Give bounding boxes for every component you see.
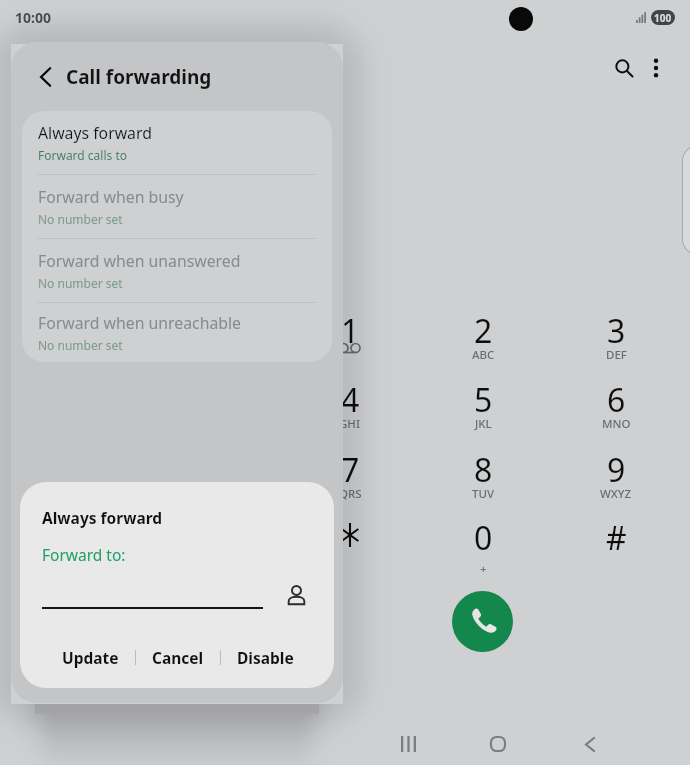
staticText: No number set [38,337,123,353]
button[interactable]: 5 [425,361,541,427]
button[interactable]: Choose contact [276,575,316,615]
staticText: ABC [472,347,495,363]
staticText: 8 [474,448,493,492]
button[interactable]: More options [636,48,676,88]
staticText: Forward when unreachable [38,312,241,334]
staticText: 10:00 [15,8,51,27]
button[interactable]: Back [27,59,63,95]
staticText: Always forward [38,122,152,144]
staticText: 5 [474,378,493,422]
staticText: + [480,561,487,577]
staticText: JKL [475,416,492,432]
staticText: WXYZ [600,486,632,502]
staticText: Cancel [152,647,204,668]
staticText: Forward when unanswered [38,250,241,272]
staticText: MNO [602,416,631,432]
staticText: Forward calls to [38,147,127,163]
button[interactable]: 9 [558,431,674,497]
button[interactable]: 6 [558,361,674,427]
button[interactable]: Recents [384,720,432,765]
staticText: 1 [341,309,360,353]
staticText: 9 [607,448,626,492]
staticText: Update [62,647,119,668]
button[interactable]: 2 [425,292,541,358]
staticText: TUV [472,486,495,502]
staticText: 0 [474,516,493,560]
staticText: 2 [474,309,493,353]
button[interactable]: 1 [292,292,408,358]
staticText: 7 [341,448,360,492]
staticText: Forward when busy [38,186,184,208]
button[interactable]: 7 [292,431,408,497]
button[interactable]: Home [474,720,522,765]
staticText: GHI [339,416,361,432]
button[interactable]: Disable [221,639,310,676]
button[interactable]: Star [292,499,408,565]
staticText: Forward to: [42,544,126,565]
button[interactable]: 0 [425,499,541,565]
button[interactable]: 3 [558,292,674,358]
button[interactable]: Forward when unreachable [22,303,332,362]
staticText: Disable [237,647,294,668]
button[interactable]: # [558,499,674,565]
staticText: # [606,516,627,560]
staticText: Call forwarding [66,64,212,90]
staticText: Always forward [42,507,163,528]
button[interactable]: Always forward [22,111,332,174]
staticText: DEF [606,347,627,363]
button[interactable]: Forward when unanswered [22,239,332,302]
button[interactable]: 4 [292,361,408,427]
staticText: No number set [38,275,123,291]
button[interactable]: Back [566,720,614,765]
staticText: 3 [607,309,626,353]
staticText: No number set [38,211,123,227]
staticText: 6 [607,378,626,422]
button[interactable]: 8 [425,431,541,497]
button[interactable]: Search [604,48,644,88]
staticText: QRS [339,486,362,502]
button[interactable]: Update [46,639,135,676]
button[interactable]: Forward when busy [22,175,332,238]
button[interactable]: Cancel [136,639,220,676]
staticText: 100 [654,11,672,25]
button[interactable]: Call [452,591,513,652]
staticText: 4 [341,378,360,422]
